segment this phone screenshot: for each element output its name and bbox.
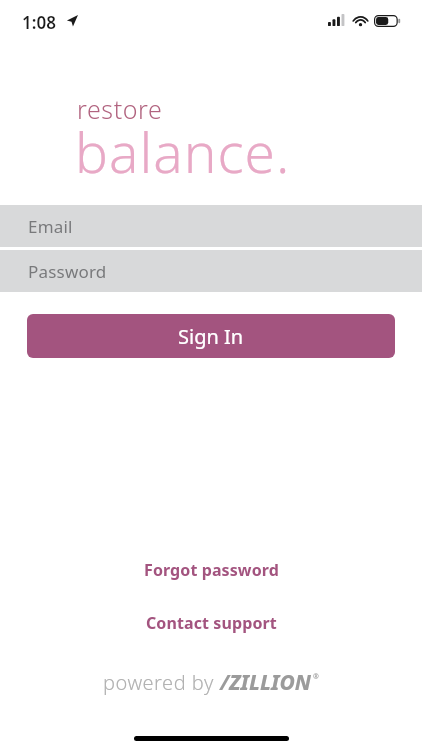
button[interactable]: Email [0,205,422,247]
other: Cellular signal [328,14,346,26]
other: Location active [66,15,78,27]
staticText: Password [28,260,107,283]
staticText: Forgot password [144,559,279,581]
staticText: Contact support [146,612,277,634]
staticText: powered by [103,669,220,696]
staticText: balance. [75,114,291,189]
button[interactable]: Contact support [0,609,422,637]
staticText: Sign In [178,323,244,350]
other: Wi-Fi [352,14,369,26]
staticText: /ZILLION [220,668,312,697]
button[interactable]: Password [0,250,422,292]
button[interactable]: Forgot password [0,556,422,584]
staticText: Email [28,215,73,238]
other: Battery [374,15,401,27]
staticText: 1:08 [22,11,56,34]
button[interactable]: Sign In [27,314,395,358]
staticText: ® [313,672,319,682]
staticText: restore [77,92,163,126]
